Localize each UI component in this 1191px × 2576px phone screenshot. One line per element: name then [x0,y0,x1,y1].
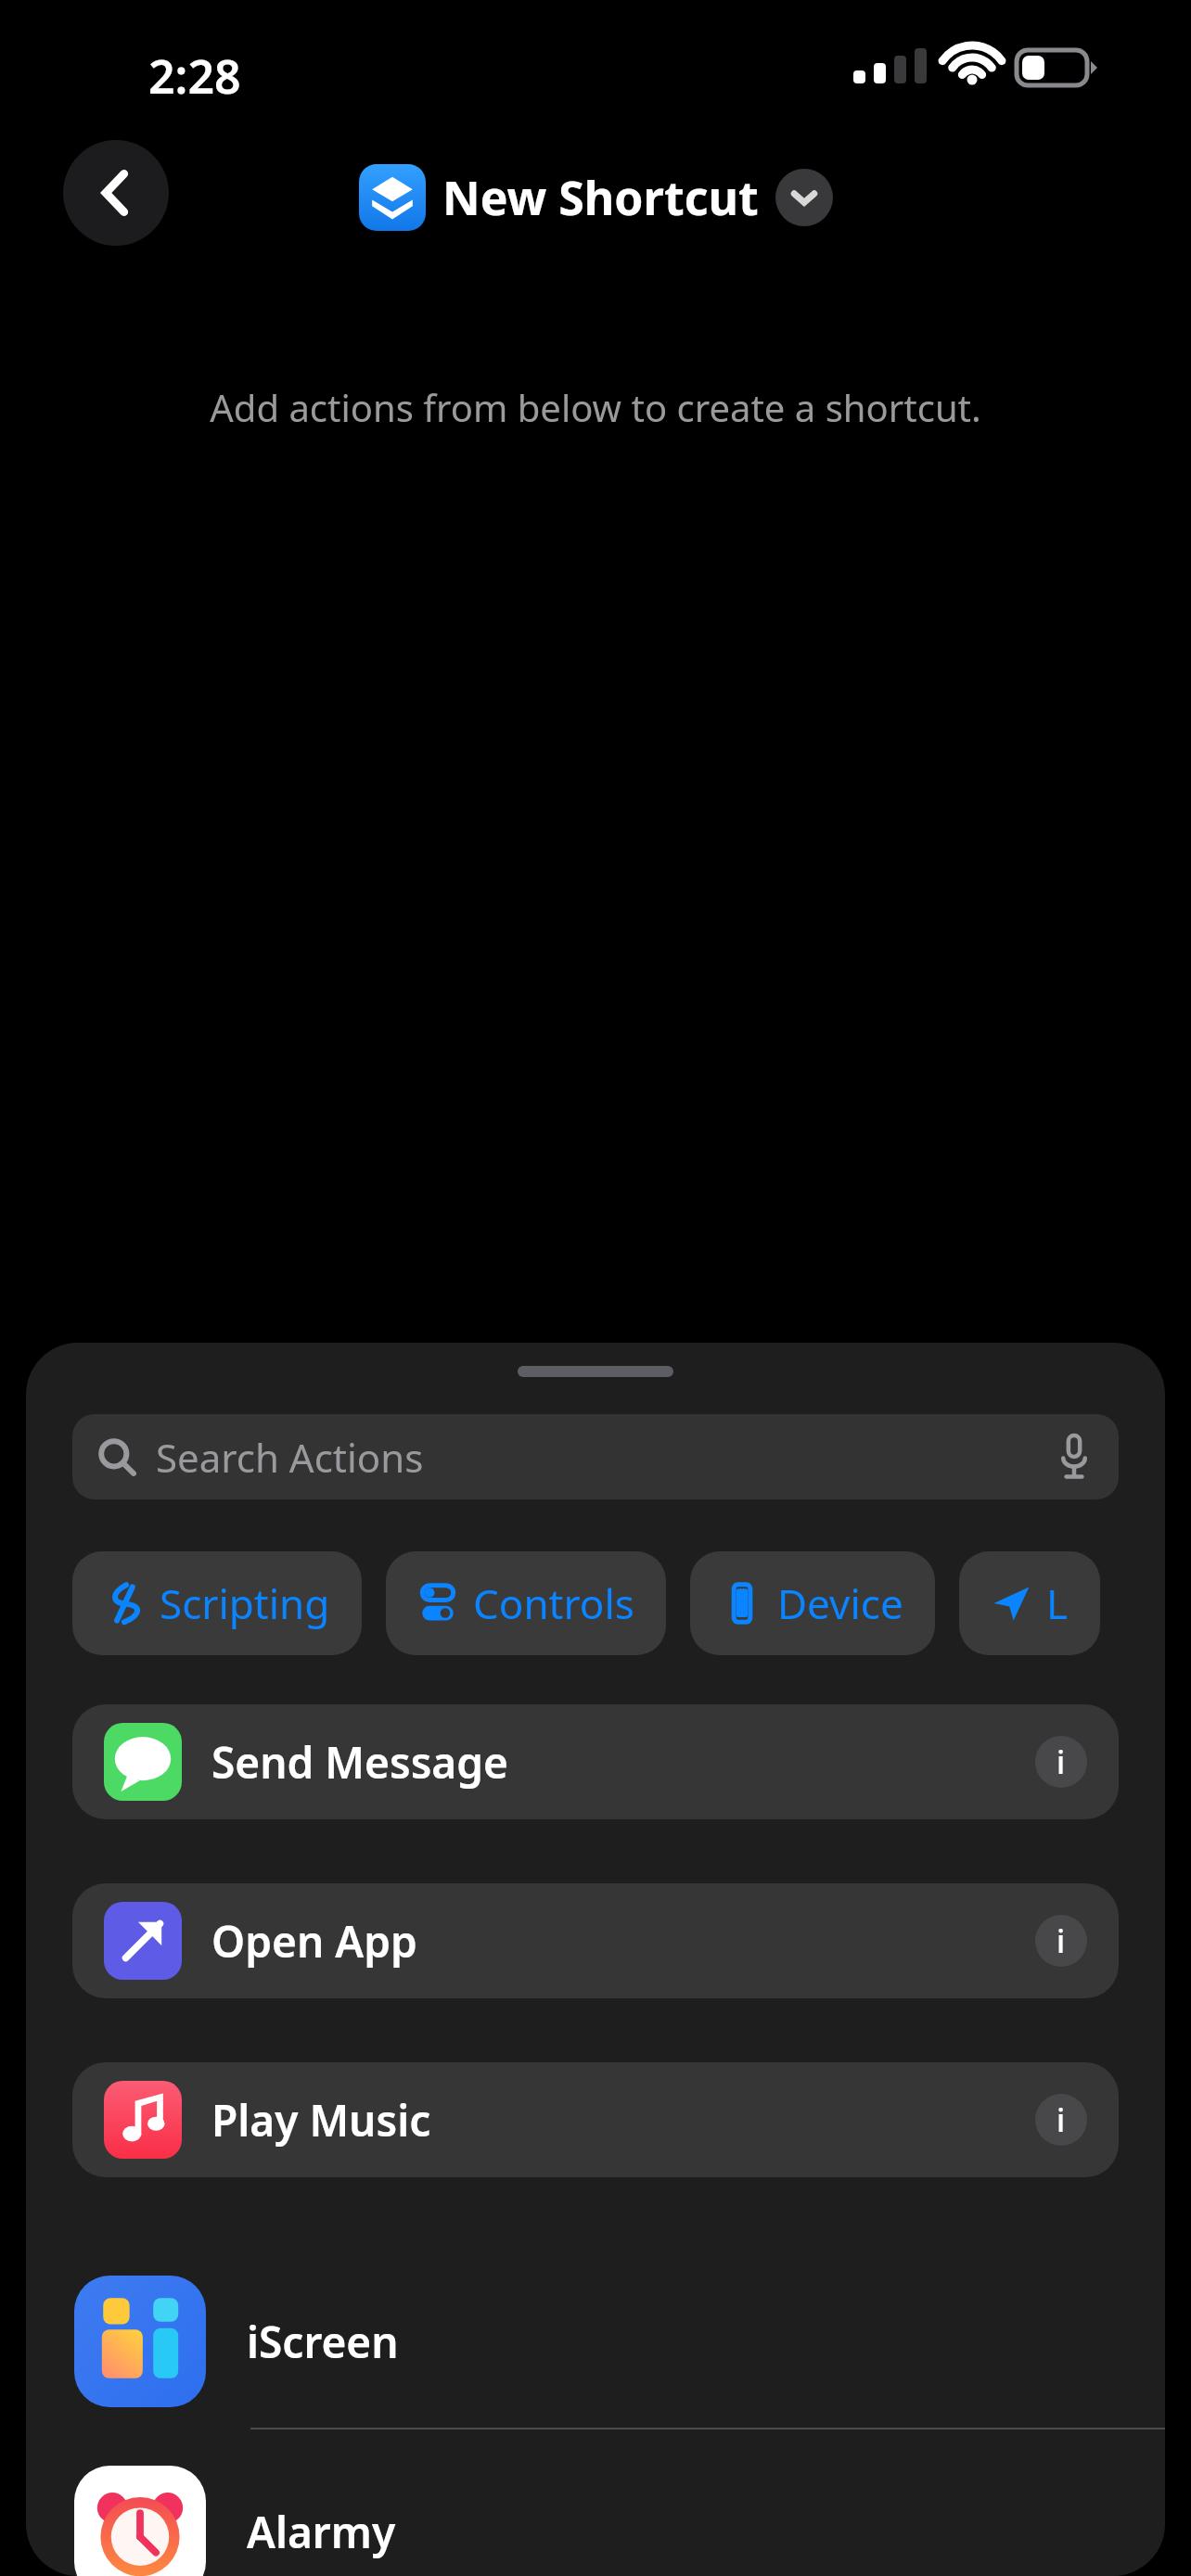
staticText: Controls [473,1575,634,1631]
staticText: Open App [211,1912,1035,1970]
staticText: Search Actions [156,1431,424,1484]
staticText: New Shortcut [442,166,759,229]
staticText: Device [777,1575,903,1631]
staticText: i [1057,2098,1066,2141]
button[interactable]: iScreen [26,2272,1165,2411]
button[interactable]: Info about Open App [1035,1915,1087,1967]
button[interactable]: Controls [386,1551,666,1655]
staticText: iScreen [247,2313,399,2371]
staticText: Scripting [160,1575,330,1631]
button[interactable]: Alarmy [26,2462,1165,2576]
button[interactable]: Search Actions [72,1414,1119,1499]
button[interactable]: Shortcut options [775,169,833,226]
staticText: L [1046,1575,1069,1631]
staticText: Add actions from below to create a short… [0,382,1191,432]
button[interactable]: New Shortcut [359,164,833,231]
button[interactable]: Open App [72,1883,1119,1998]
button[interactable]: L [959,1551,1100,1655]
staticText: Alarmy [247,2503,396,2561]
staticText: Send Message [211,1733,1035,1792]
staticText: Play Music [211,2091,1035,2149]
staticText: i [1057,1741,1066,1783]
button[interactable]: Info about Play Music [1035,2094,1087,2146]
button[interactable]: Send Message [72,1704,1119,1819]
button[interactable]: Back [63,140,169,246]
button[interactable]: Scripting [72,1551,362,1655]
button[interactable]: Device [690,1551,935,1655]
staticText: 2:28 [148,45,241,102]
button[interactable]: Info about Send Message [1035,1736,1087,1788]
staticText: i [1057,1919,1066,1962]
button[interactable]: Play Music [72,2062,1119,2177]
